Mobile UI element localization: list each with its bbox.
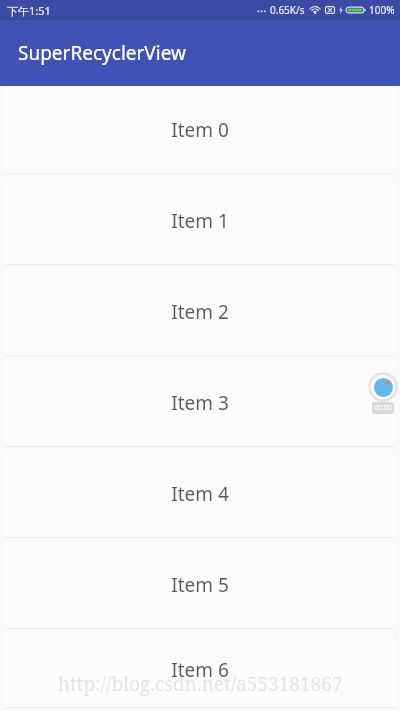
button[interactable]: Item 3 [4, 360, 395, 446]
staticText: SuperRecyclerView [18, 40, 186, 66]
staticText: Item 4 [171, 481, 229, 507]
button[interactable]: Item 0 [4, 87, 395, 173]
staticText: 00:00 [374, 403, 392, 413]
staticText: Item 2 [171, 299, 229, 325]
staticText: 0.65K/s [270, 3, 305, 17]
button[interactable]: Item 6 [4, 633, 395, 707]
staticText: Item 3 [171, 390, 229, 416]
staticText: 100% [369, 3, 395, 17]
button[interactable]: Item 2 [4, 269, 395, 355]
staticText: Item 1 [171, 208, 229, 234]
staticText: 下午1:51 [7, 3, 51, 18]
staticText: Item 0 [171, 117, 229, 143]
staticText: Item 6 [171, 657, 229, 683]
button[interactable]: Item 4 [4, 451, 395, 537]
staticText: Item 5 [171, 572, 229, 598]
staticText: http://blog.csdn.net/a553181867 [58, 671, 343, 697]
button[interactable]: Timer [368, 373, 398, 417]
button[interactable]: Item 5 [4, 542, 395, 628]
button[interactable]: Item 1 [4, 178, 395, 264]
